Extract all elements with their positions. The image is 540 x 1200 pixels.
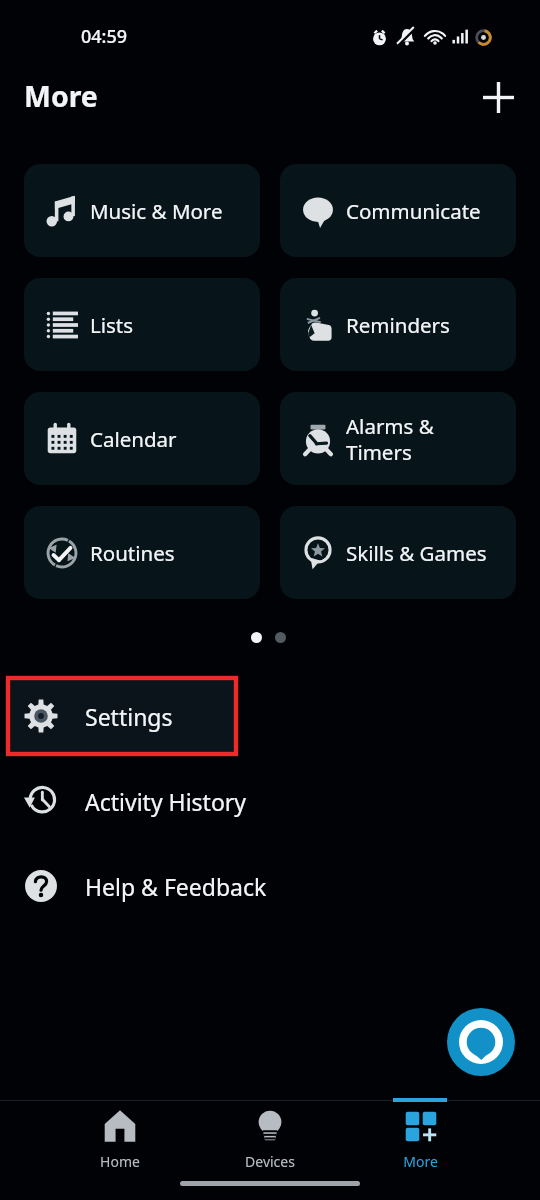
staticText: Activity History — [85, 786, 247, 817]
staticText: Routines — [90, 539, 175, 567]
button[interactable]: Help & Feedback — [0, 844, 540, 928]
staticText: Lists — [90, 311, 134, 339]
button[interactable]: Lists — [24, 278, 260, 371]
button[interactable]: Settings — [0, 674, 540, 758]
staticText: Skills & Games — [346, 539, 487, 567]
staticText: More — [403, 1152, 438, 1171]
button[interactable]: Devices — [215, 1100, 325, 1176]
staticText: 04:59 — [81, 24, 128, 49]
button[interactable]: Add — [476, 75, 520, 119]
button[interactable]: Skills & Games — [280, 506, 516, 599]
staticText: Music & More — [90, 197, 223, 225]
staticText: Help & Feedback — [85, 871, 267, 902]
staticText: Alarms & Timers — [346, 412, 434, 466]
button[interactable]: Routines — [24, 506, 260, 599]
button[interactable]: Music & More — [24, 164, 260, 257]
button[interactable]: Alarms & Timers — [280, 392, 516, 485]
staticText: Reminders — [346, 311, 450, 339]
button[interactable]: Calendar — [24, 392, 260, 485]
staticText: Communicate — [346, 197, 481, 225]
staticText: Home — [100, 1152, 140, 1171]
button[interactable]: Alexa — [447, 1008, 515, 1076]
staticText: Settings — [85, 701, 173, 732]
button[interactable]: Activity History — [0, 759, 540, 843]
staticText: More — [24, 77, 98, 116]
staticText: Calendar — [90, 425, 177, 453]
button[interactable]: Communicate — [280, 164, 516, 257]
button[interactable]: Home — [65, 1100, 175, 1176]
button[interactable]: Reminders — [280, 278, 516, 371]
button[interactable]: More — [365, 1100, 475, 1176]
staticText: Devices — [245, 1152, 295, 1171]
